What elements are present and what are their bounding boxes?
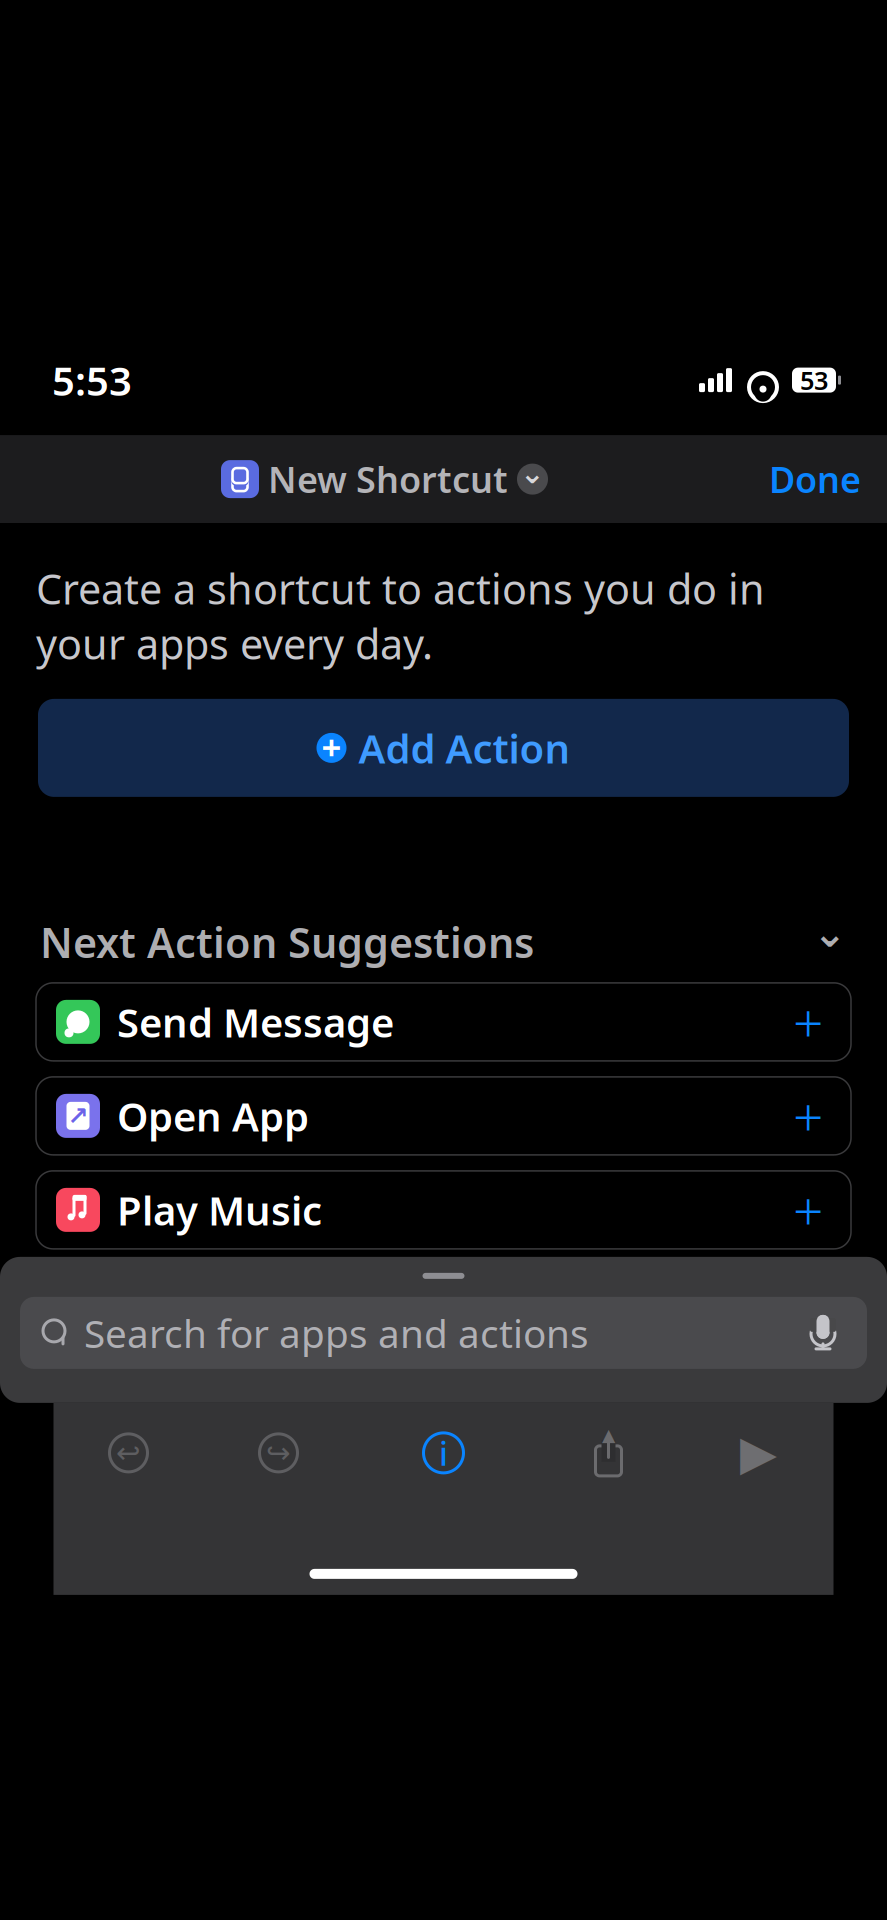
staticText: ↪ [266,1436,291,1469]
staticText: ⌄ [520,456,545,490]
staticText: 53 [800,363,828,397]
button[interactable]: Done [769,455,887,503]
staticText: New Shortcut [268,455,508,503]
staticText: ↗ [67,1101,88,1130]
button[interactable]: ↗ [36,1077,851,1155]
staticText: Add Action [358,721,570,774]
button[interactable]: Play Music [36,1171,851,1249]
button[interactable]: Send Message [36,983,851,1061]
staticText: Search for apps and actions [84,1307,589,1358]
staticText: + [793,986,823,1057]
button[interactable]: Search for apps and actions [0,1279,887,1369]
button[interactable]: Undo [53,1407,203,1499]
button[interactable]: Redo [203,1407,353,1499]
staticText: Next Action Suggestions [40,914,534,969]
staticText: Open App [117,1089,309,1142]
staticText: ▲ [602,1425,615,1445]
staticText: + [793,1080,823,1151]
button[interactable]: New Shortcut [221,455,548,503]
staticText: ↩ [116,1436,141,1469]
button[interactable]: Run Shortcut [683,1407,833,1499]
staticText: Send Message [117,995,394,1048]
button[interactable]: Details [353,1407,533,1499]
staticText: + [321,724,341,770]
staticText: Play Music [117,1183,322,1236]
button[interactable]: Next Action Suggestions [0,915,887,969]
staticText: i [439,1431,448,1475]
button[interactable]: + [38,699,849,797]
staticText: ▶ [740,1426,777,1480]
staticText: 5:53 [52,354,132,407]
button[interactable]: Share [533,1407,683,1499]
staticText: + [793,1174,823,1245]
staticText: ⌄ [813,910,847,956]
staticText: Create a shortcut to actions you do in y… [36,561,765,671]
staticText: Done [769,455,861,503]
